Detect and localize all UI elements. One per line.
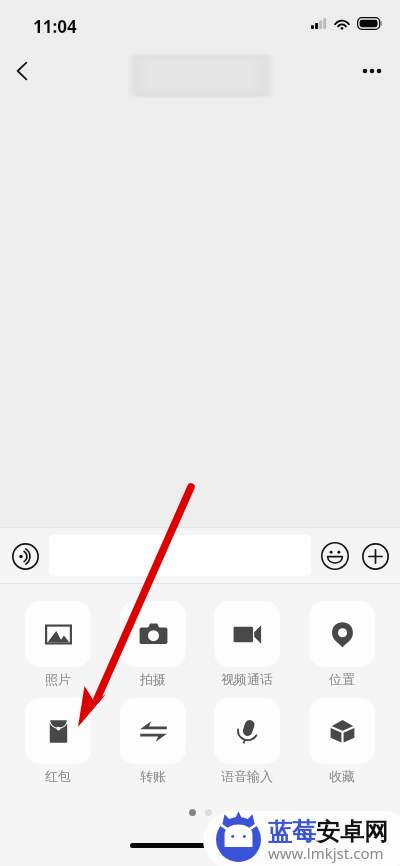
staticText: 安卓网 — [316, 817, 388, 847]
button[interactable]: Emoji — [318, 539, 352, 573]
button[interactable]: 转账 — [120, 698, 186, 784]
button[interactable]: 照片 — [25, 601, 91, 687]
staticText: 转账 — [140, 768, 166, 784]
staticText: 照片 — [45, 671, 71, 687]
staticText: 11:04 — [33, 15, 77, 38]
button[interactable]: 拍摄 — [120, 601, 186, 687]
staticText: www.lmkjst.com — [268, 843, 384, 863]
button[interactable]: 语音输入 — [214, 698, 280, 784]
button[interactable]: More — [352, 51, 392, 91]
staticText: 位置 — [329, 671, 355, 687]
staticText: 红包 — [45, 768, 71, 784]
button[interactable] — [49, 535, 311, 576]
staticText: 拍摄 — [140, 671, 166, 687]
staticText: 蓝莓 — [268, 817, 316, 847]
button[interactable]: Back — [2, 51, 42, 91]
button[interactable]: 视频通话 — [214, 601, 280, 687]
staticText: 语音输入 — [221, 768, 273, 784]
button[interactable]: 收藏 — [309, 698, 375, 784]
button[interactable]: More options — [358, 539, 392, 573]
staticText: 收藏 — [329, 768, 355, 784]
staticText: 视频通话 — [221, 671, 273, 687]
button[interactable]: 位置 — [309, 601, 375, 687]
button[interactable]: 红包 — [25, 698, 91, 784]
button[interactable]: Voice input — [5, 536, 45, 576]
